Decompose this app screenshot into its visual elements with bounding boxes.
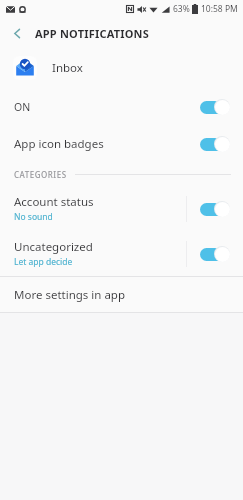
staticText: App icon badges	[14, 136, 200, 152]
button[interactable]: Uncategorized	[0, 231, 243, 276]
staticText: Inbox	[52, 60, 83, 76]
staticText: Let app decide	[14, 256, 73, 268]
staticText: CATEGORIES	[14, 169, 67, 180]
staticText: 63%	[173, 3, 190, 15]
staticText: APP NOTIFICATIONS	[35, 26, 150, 41]
button[interactable]: More settings in app	[0, 277, 243, 312]
staticText: More settings in app	[14, 287, 125, 303]
staticText: No sound	[14, 211, 53, 223]
button[interactable]: Account status	[0, 186, 243, 231]
staticText: ON	[14, 100, 200, 114]
button[interactable]: Back	[6, 22, 28, 44]
button[interactable]: Inbox	[0, 48, 243, 88]
staticText: 10:58 PM	[201, 3, 238, 15]
button[interactable]: ON	[0, 88, 243, 125]
staticText: Account status	[14, 194, 94, 210]
button[interactable]: App icon badges	[0, 125, 243, 162]
staticText: Uncategorized	[14, 239, 93, 255]
